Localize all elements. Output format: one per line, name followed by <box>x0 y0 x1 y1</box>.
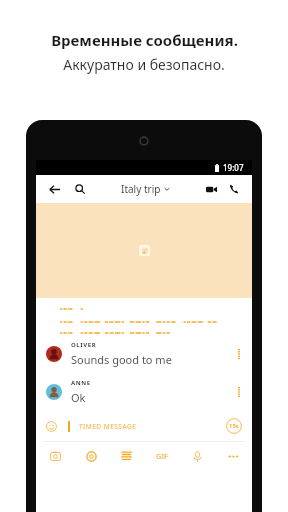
staticText: Ok <box>71 390 86 405</box>
button[interactable]: Camera <box>46 447 64 465</box>
staticText: Временные сообщения. <box>51 30 238 50</box>
button[interactable]: More options <box>234 345 244 363</box>
button[interactable]: ANNE <box>36 373 252 411</box>
staticText: TIMED MESSAGE <box>79 422 137 431</box>
button[interactable]: OLIVER <box>36 335 252 373</box>
button[interactable]: More options <box>234 383 244 401</box>
button[interactable]: Back <box>45 180 63 198</box>
staticText: OLIVER <box>71 341 97 349</box>
staticText: Italy trip <box>121 182 161 196</box>
staticText: ANNE <box>71 379 91 387</box>
button[interactable]: Call <box>225 180 243 198</box>
button[interactable]: Voice message <box>188 447 206 465</box>
button[interactable]: Video call <box>202 180 220 198</box>
button[interactable]: Effects <box>82 447 100 465</box>
button[interactable]: Stickers <box>117 447 135 465</box>
staticText: Sounds good to me <box>71 352 172 367</box>
button[interactable]: More <box>224 447 242 465</box>
button[interactable]: 15s <box>226 418 242 434</box>
staticText: 19:07 <box>223 162 244 173</box>
staticText: GIF <box>156 451 169 461</box>
button[interactable]: Search <box>71 180 89 198</box>
button[interactable]: TIMED MESSAGE <box>36 411 252 441</box>
staticText: Аккуратно и безопасно. <box>63 55 225 74</box>
button[interactable]: GIF <box>153 447 171 465</box>
button[interactable]: Italy trip <box>121 182 170 196</box>
staticText: 15s <box>229 422 239 430</box>
